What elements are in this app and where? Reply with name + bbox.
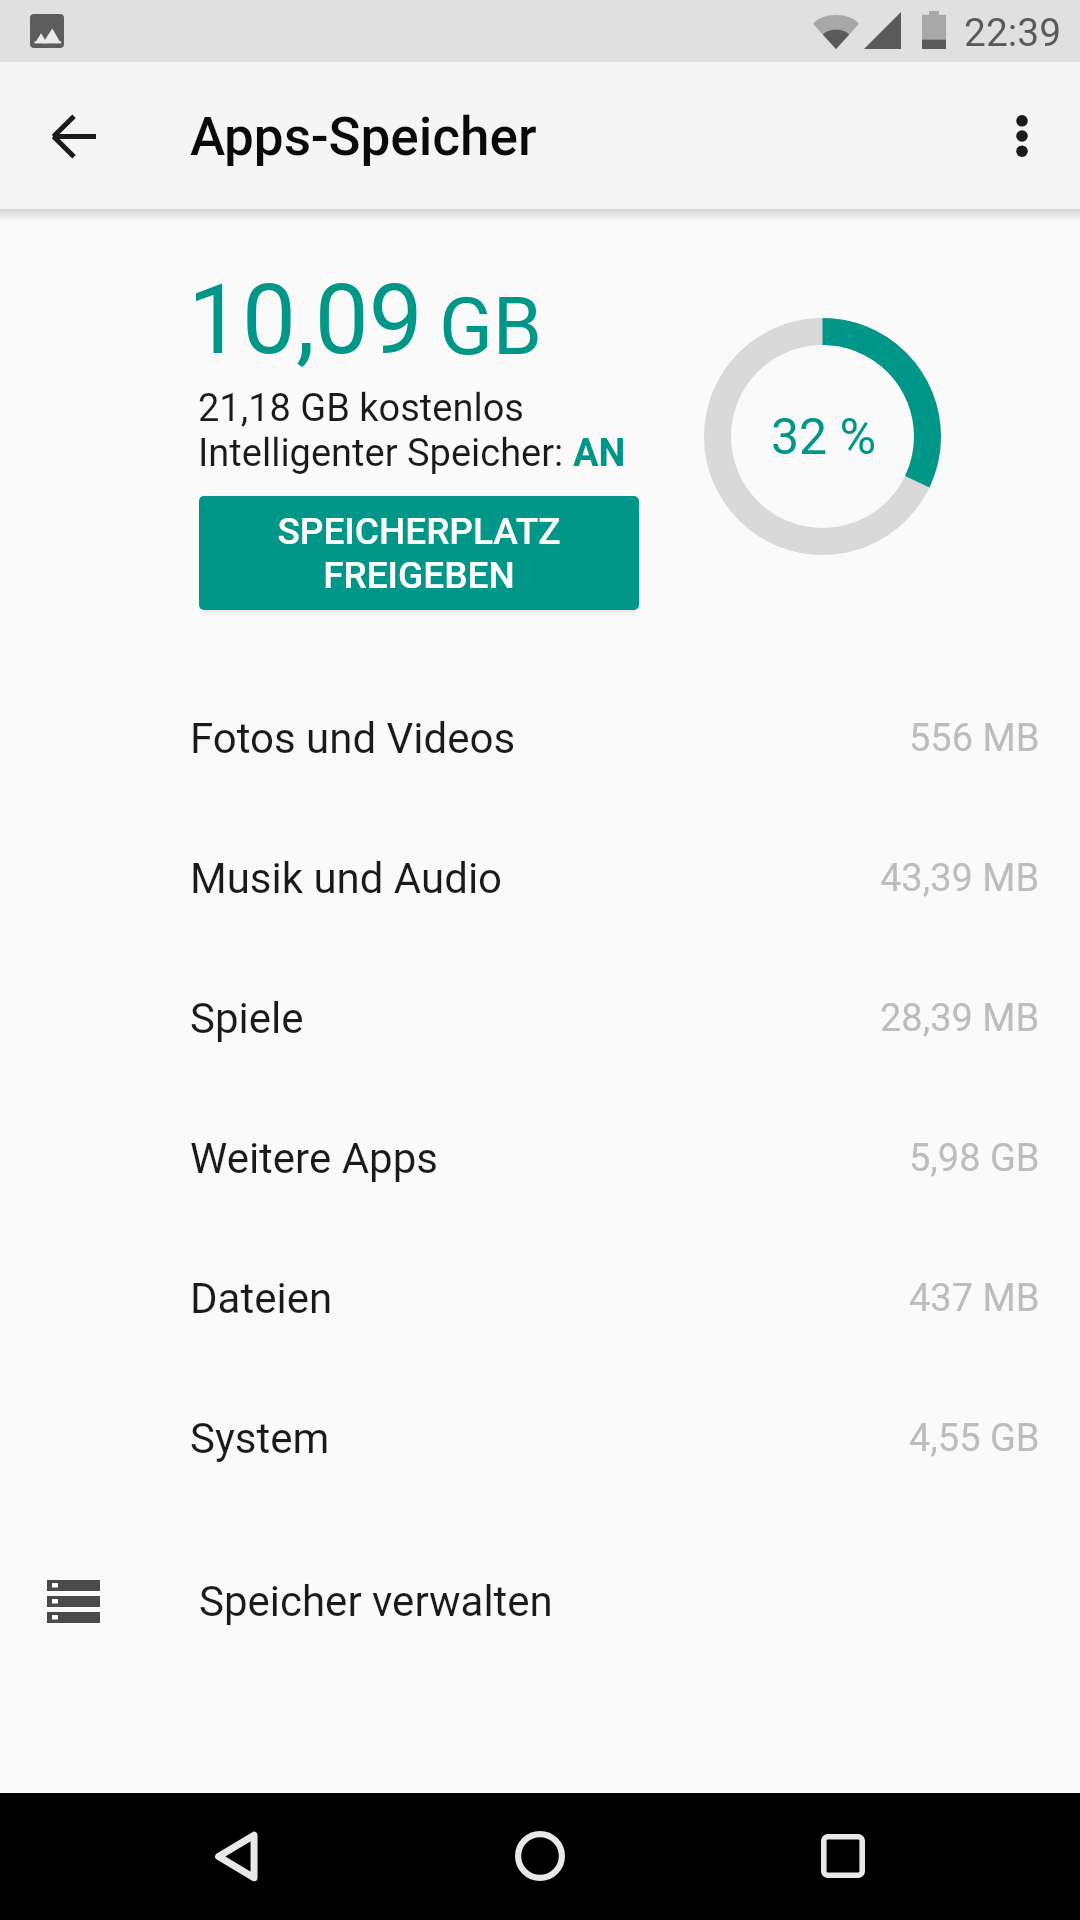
- staticText: Apps-Speicher: [190, 106, 537, 168]
- staticText: Intelligenter Speicher:: [198, 431, 573, 476]
- button[interactable]: Musik und Audio: [0, 808, 1080, 948]
- staticText: 5,98 GB: [909, 1136, 1040, 1181]
- button[interactable]: More options: [976, 90, 1068, 182]
- button[interactable]: SPEICHERPLATZ FREIGEBEN: [199, 496, 639, 610]
- staticText: 437 MB: [909, 1276, 1040, 1321]
- staticText: System: [190, 1414, 330, 1463]
- staticText: Weitere Apps: [190, 1134, 438, 1183]
- staticText: 43,39 MB: [880, 856, 1040, 901]
- staticText: Dateien: [190, 1274, 333, 1323]
- button[interactable]: Spiele: [0, 948, 1080, 1088]
- staticText: 22:39: [964, 10, 1062, 56]
- button[interactable]: Speicher verwalten: [0, 1531, 1080, 1671]
- staticText: 28,39 MB: [880, 996, 1040, 1041]
- staticText: 10,09: [188, 264, 423, 377]
- staticText: 21,18 GB kostenlos: [198, 386, 524, 431]
- button[interactable]: Fotos und Videos: [0, 668, 1080, 808]
- button[interactable]: System: [0, 1368, 1080, 1508]
- staticText: SPEICHERPLATZ FREIGEBEN: [199, 510, 639, 597]
- staticText: Spiele: [190, 994, 304, 1043]
- button[interactable]: Home: [494, 1810, 586, 1902]
- staticText: Speicher verwalten: [199, 1577, 553, 1626]
- staticText: 4,55 GB: [909, 1416, 1040, 1461]
- button[interactable]: Dateien: [0, 1228, 1080, 1368]
- staticText: 556 MB: [909, 716, 1040, 761]
- staticText: Fotos und Videos: [190, 714, 516, 763]
- staticText: 32 %: [771, 408, 877, 467]
- button[interactable]: Back: [28, 90, 120, 182]
- button[interactable]: Back: [190, 1810, 282, 1902]
- staticText: Musik und Audio: [190, 854, 503, 903]
- button[interactable]: Weitere Apps: [0, 1088, 1080, 1228]
- button[interactable]: Recent apps: [797, 1810, 889, 1902]
- staticText: AN: [573, 431, 626, 476]
- staticText: GB: [439, 281, 543, 374]
